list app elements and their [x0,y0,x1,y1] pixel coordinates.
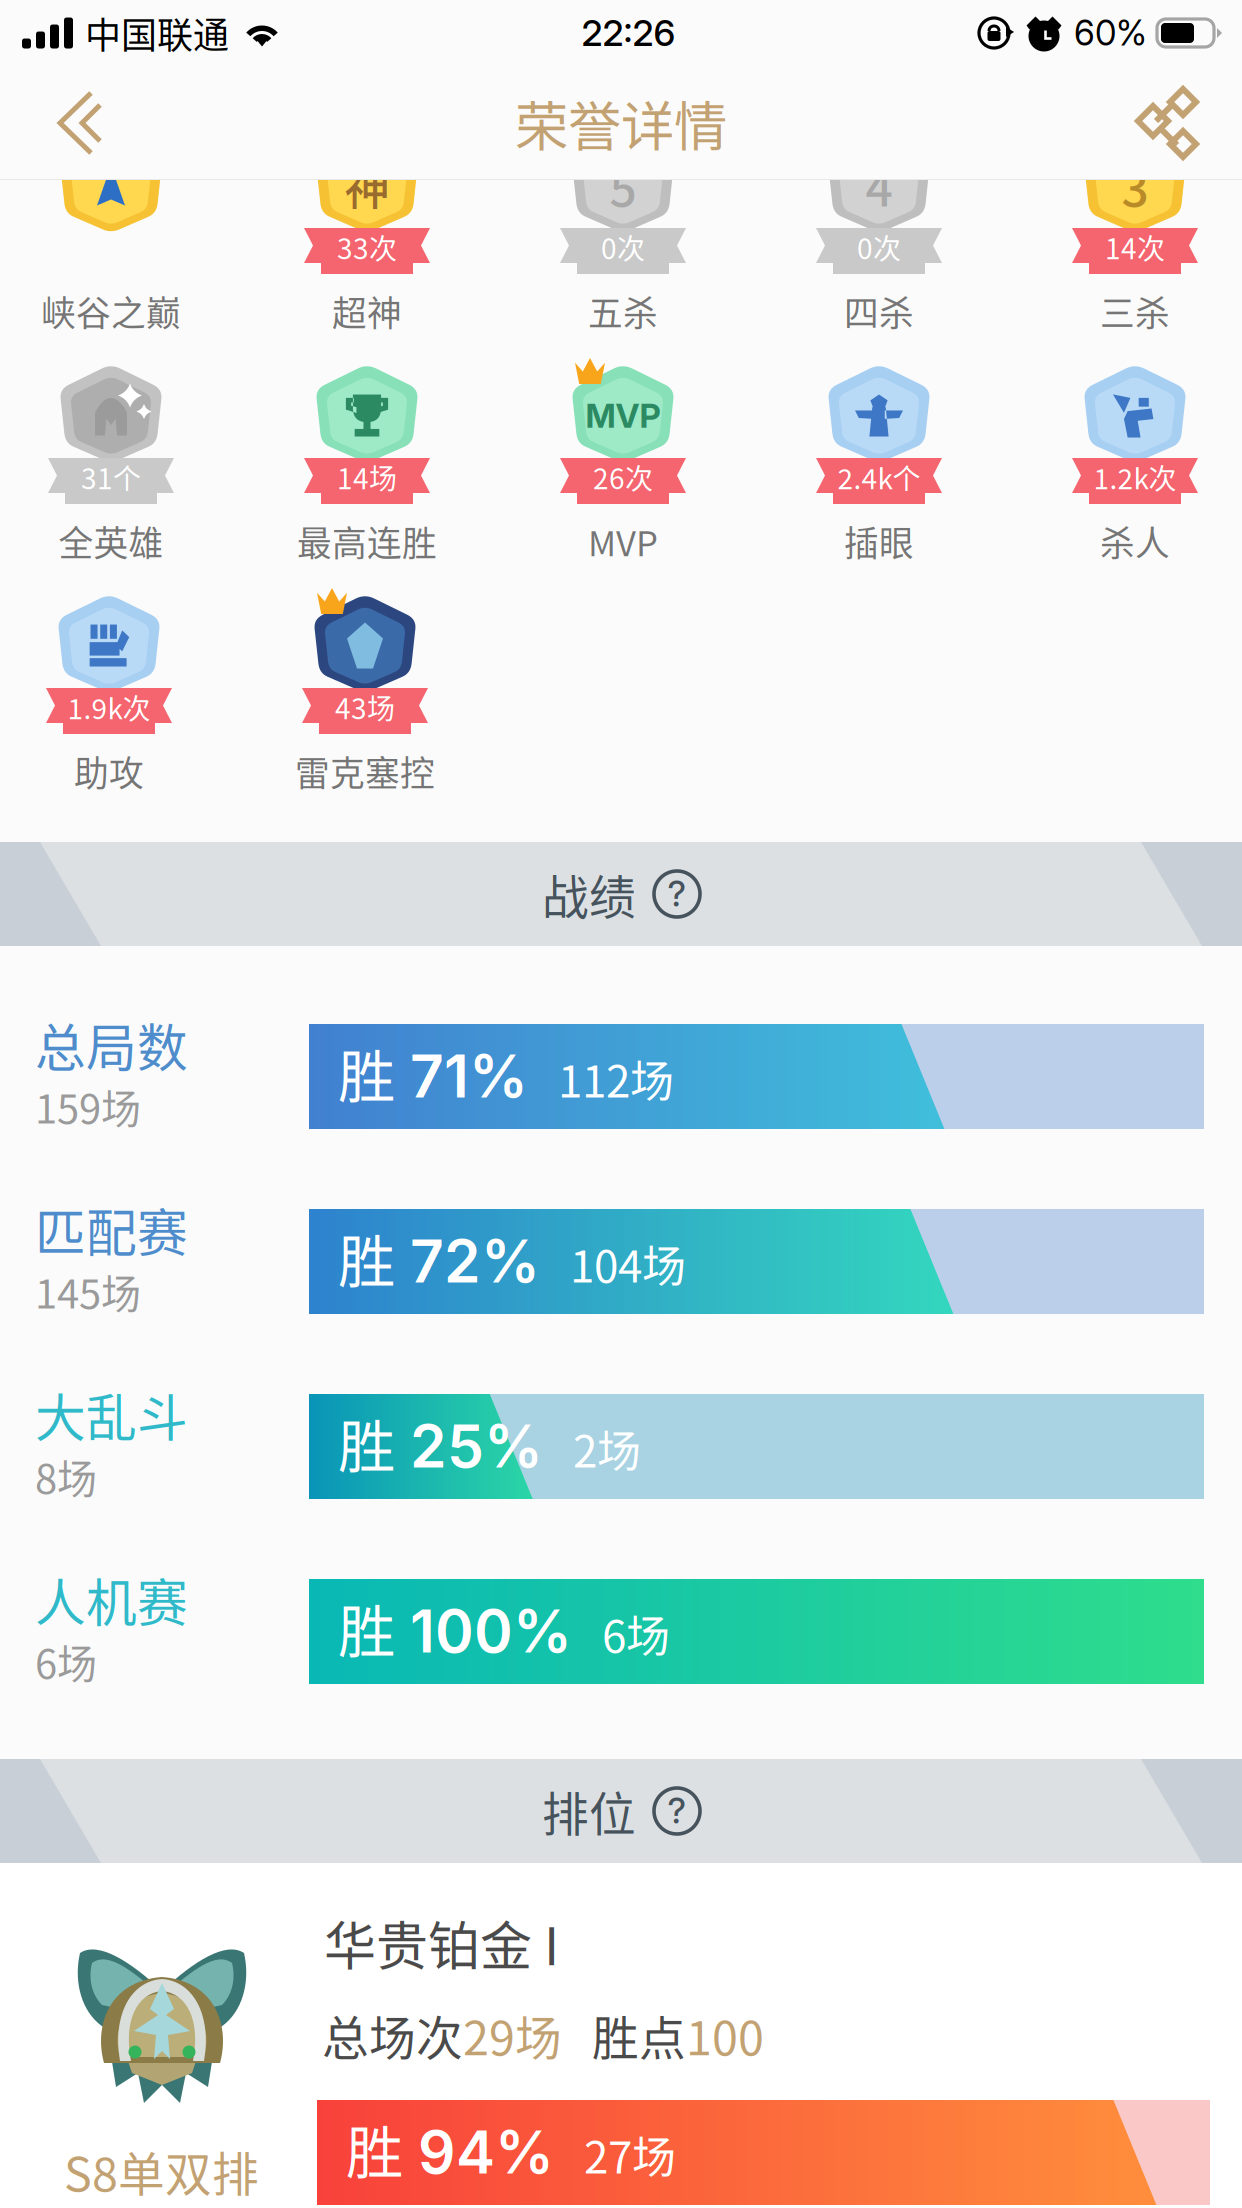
staticText: 胜 [338,1031,395,1114]
staticText: 8场 [35,1447,97,1505]
staticText: 四杀 [844,286,914,336]
button[interactable]: MVP [518,364,728,560]
staticText: 人机赛 [35,1563,188,1636]
staticText: 0次 [601,227,645,267]
staticText: 31个 [81,457,141,497]
button[interactable]: 神 [262,134,472,330]
staticText: 胜 [346,2107,403,2190]
staticText: MVP [588,516,658,566]
staticText: 112场 [528,1046,674,1110]
staticText: 60% [1074,12,1147,54]
staticText: 胜 [338,1401,395,1484]
staticText: 43场 [335,687,395,727]
staticText: 100% [395,1596,572,1667]
staticText: 6场 [35,1632,97,1690]
staticText: 胜 [338,1586,395,1669]
button[interactable]: 1.9k次 [4,594,214,790]
staticText: 杀人 [1100,516,1170,566]
staticText: 5 [609,151,636,220]
button[interactable]: 2.4k个 [774,364,984,560]
staticText: 全英雄 [58,516,163,566]
staticText: 中国联通 [85,7,229,59]
staticText: 2场 [543,1416,641,1480]
staticText: 五杀 [588,286,658,336]
staticText: 72% [395,1226,540,1297]
staticText: 大乱斗 [35,1378,188,1451]
staticText: 94% [403,2117,554,2188]
staticText: 华贵铂金 I [324,1905,559,1980]
staticText: 3 [1121,151,1148,220]
staticText: 14次 [1105,227,1165,267]
staticText: 4 [865,151,892,220]
staticText: S8单双排 [64,2137,259,2205]
button[interactable]: 43场 [260,594,470,790]
staticText: 总局数 [35,1008,188,1081]
staticText: 6场 [572,1601,670,1665]
button[interactable]: 峡谷之巅 [6,134,216,330]
staticText: 胜点 [562,2001,686,2069]
staticText: 三杀 [1100,286,1170,336]
staticText: 插眼 [844,516,914,566]
staticText: 匹配赛 [35,1193,188,1266]
staticText: 25% [395,1411,543,1482]
button[interactable]: 1.2k次 [1030,364,1240,560]
staticText: 14场 [337,457,397,497]
button[interactable]: 31个 [6,364,216,560]
staticText: 总场次 [322,2001,463,2069]
staticText: 104场 [540,1231,686,1295]
staticText: 排位 [542,1777,636,1845]
staticText: 1.2k次 [1093,457,1176,497]
staticText: ? [667,873,686,915]
staticText: 100 [686,2001,764,2069]
staticText: 159场 [35,1077,141,1135]
staticText: 2.4k个 [837,457,920,497]
staticText: 33次 [337,227,397,267]
button[interactable]: 5 [518,134,728,330]
staticText: ? [667,1790,686,1832]
staticText: 最高连胜 [297,516,437,566]
button[interactable]: 分享 [1092,66,1242,180]
button[interactable]: 14场 [262,364,472,560]
staticText: 22:26 [581,11,675,55]
staticText: 雷克塞控 [295,746,435,796]
staticText: MVP [585,395,660,436]
button[interactable]: 返回 [0,66,150,180]
staticText: 1.9k次 [67,687,150,727]
staticText: 战绩 [542,860,636,928]
staticText: 26次 [593,457,653,497]
staticText: 荣誉详情 [515,84,727,162]
staticText: 145场 [35,1262,141,1320]
button[interactable]: 4 [774,134,984,330]
staticText: 27场 [554,2122,676,2186]
staticText: 峡谷之巅 [41,286,181,336]
staticText: 神 [344,153,389,218]
button[interactable]: 3 [1030,134,1240,330]
staticText: 29场 [463,2001,562,2069]
staticText: 71% [395,1041,528,1112]
staticText: 助攻 [74,746,144,796]
staticText: 0次 [857,227,901,267]
staticText: 胜 [338,1216,395,1299]
staticText: 超神 [332,286,402,336]
